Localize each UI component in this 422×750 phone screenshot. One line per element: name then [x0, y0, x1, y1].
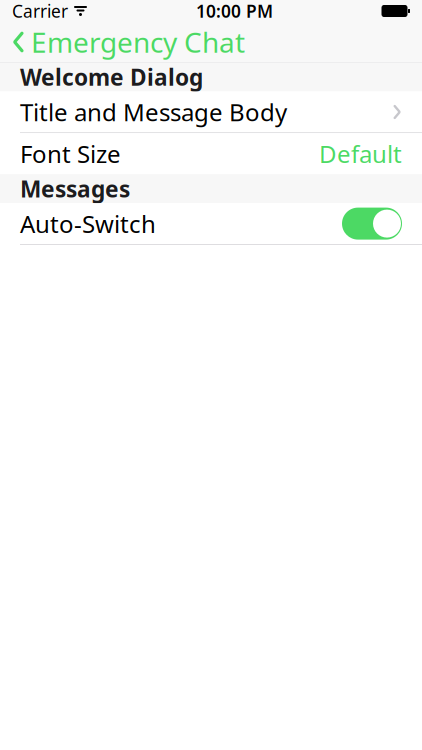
button[interactable]: Title and Message Body — [0, 91, 422, 132]
staticText: Font Size — [20, 138, 121, 170]
staticText: 10:00 PM — [196, 0, 273, 22]
button[interactable]: Font Size — [0, 133, 422, 174]
staticText: Title and Message Body — [20, 96, 287, 128]
button[interactable]: Auto-Switch — [342, 208, 402, 240]
button[interactable]: Emergency Chat — [0, 22, 255, 62]
staticText: Emergency Chat — [31, 23, 245, 61]
staticText: Welcome Dialog — [20, 62, 203, 92]
staticText: Carrier — [12, 0, 68, 22]
staticText: Auto-Switch — [20, 208, 156, 240]
staticText: Default — [319, 138, 402, 170]
staticText: Messages — [20, 173, 130, 204]
